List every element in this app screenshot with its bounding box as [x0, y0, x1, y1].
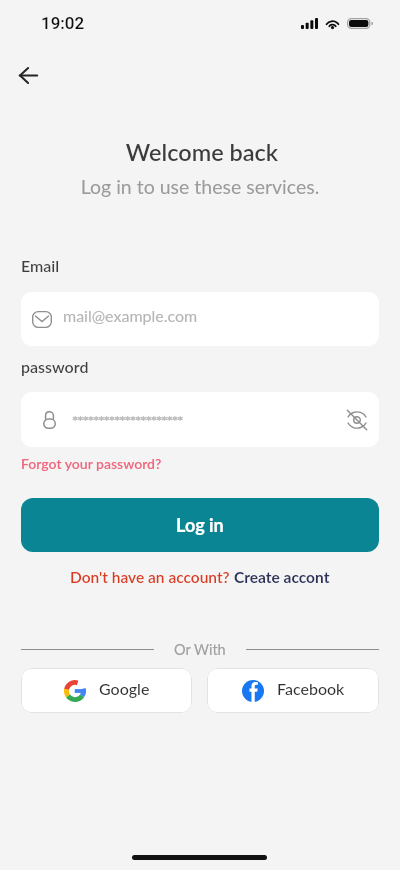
staticText: Create accont: [234, 568, 330, 587]
staticText: Log in to use these services.: [0, 175, 400, 198]
staticText: Don't have an account?: [70, 568, 234, 587]
button[interactable]: Forgot your password?: [21, 455, 162, 472]
button[interactable]: Facebook: [207, 668, 379, 713]
staticText: Log in: [176, 514, 224, 536]
staticText: 19:02: [41, 13, 85, 33]
staticText: mail@example.com: [63, 306, 198, 325]
button[interactable]: Show password: [21, 392, 379, 447]
staticText: Google: [99, 679, 150, 698]
staticText: Welcome back: [2, 138, 400, 166]
staticText: Or With: [174, 641, 226, 658]
staticText: Email: [21, 256, 60, 275]
button[interactable]: Log in: [21, 498, 379, 552]
staticText: Facebook: [277, 679, 345, 698]
staticText: password: [21, 357, 89, 376]
button[interactable]: Back: [8, 55, 48, 95]
button[interactable]: Google: [21, 668, 192, 713]
button[interactable]: mail@example.com: [21, 292, 379, 346]
button[interactable]: Don't have an account?: [0, 568, 400, 587]
button[interactable]: Show password: [343, 406, 371, 434]
